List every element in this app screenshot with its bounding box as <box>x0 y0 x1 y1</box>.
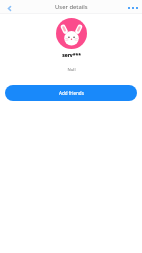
staticText: Add friends <box>59 90 84 96</box>
staticText: serv*** <box>62 52 81 59</box>
button[interactable]: Add friends <box>5 85 137 101</box>
staticText: serv*** <box>62 52 81 59</box>
button[interactable]: Back <box>0 0 16 14</box>
staticText: User details <box>55 3 88 11</box>
button[interactable]: More options <box>127 2 139 14</box>
staticText: Null <box>67 66 76 72</box>
